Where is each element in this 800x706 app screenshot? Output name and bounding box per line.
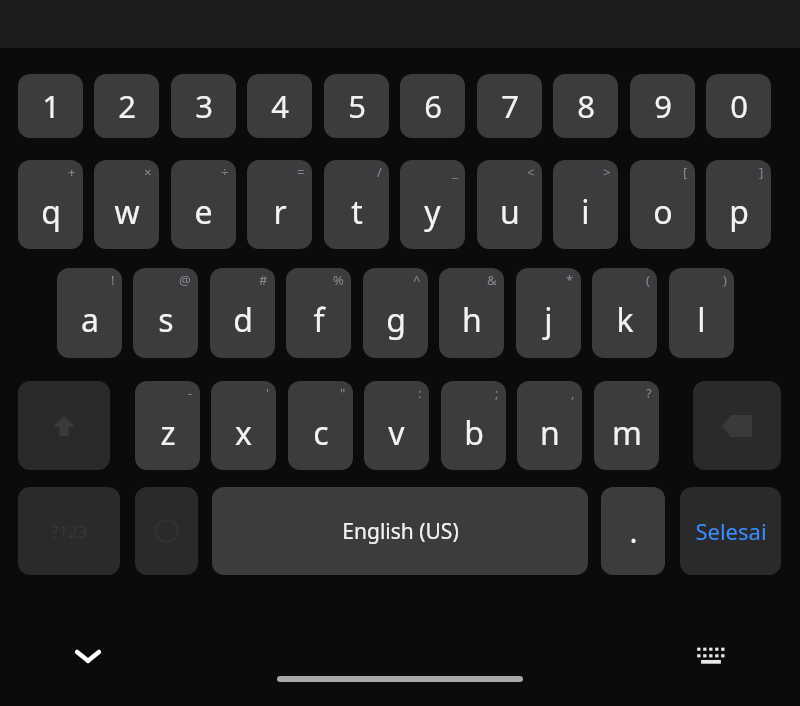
button[interactable]: _ — [400, 160, 465, 249]
staticText: t — [351, 190, 363, 234]
button[interactable]: × — [94, 160, 159, 249]
button[interactable]: [ — [630, 160, 695, 249]
staticText: j — [544, 298, 553, 342]
staticText: ( — [646, 271, 650, 289]
button[interactable]: Backspace — [693, 381, 781, 470]
staticText: m — [612, 411, 642, 455]
staticText: 3 — [195, 85, 213, 127]
staticText: u — [500, 190, 520, 234]
button[interactable]: 4 — [247, 74, 312, 138]
staticText: 9 — [654, 85, 672, 127]
button[interactable]: Switch keyboard — [681, 626, 741, 686]
staticText: - — [188, 384, 193, 402]
staticText: # — [259, 271, 268, 289]
button[interactable]: ( — [592, 268, 657, 358]
staticText: > — [603, 163, 611, 181]
button[interactable]: 9 — [630, 74, 695, 138]
staticText: p — [729, 190, 749, 234]
staticText: Selesai — [695, 516, 767, 546]
staticText: % — [333, 271, 344, 289]
staticText: 4 — [271, 85, 289, 127]
staticText: s — [158, 298, 174, 342]
staticText: 5 — [348, 85, 366, 127]
button[interactable]: > — [553, 160, 618, 249]
button[interactable]: 6 — [400, 74, 465, 138]
staticText: × — [144, 163, 152, 181]
staticText: ^ — [413, 271, 421, 289]
staticText: ' — [266, 384, 269, 402]
button[interactable]: # — [210, 268, 275, 358]
button[interactable]: " — [288, 381, 353, 470]
staticText: / — [377, 163, 382, 181]
button[interactable]: = — [247, 160, 312, 249]
staticText: b — [464, 411, 484, 455]
button[interactable]: 2 — [94, 74, 159, 138]
button[interactable]: / — [324, 160, 389, 249]
button[interactable]: ! — [57, 268, 122, 358]
staticText: = — [297, 163, 305, 181]
button[interactable]: Emoji — [135, 487, 198, 575]
staticText: 8 — [577, 85, 595, 127]
staticText: ] — [759, 163, 764, 181]
button[interactable]: * — [516, 268, 581, 358]
button[interactable]: 7 — [477, 74, 542, 138]
staticText: . — [629, 511, 638, 552]
staticText: l — [697, 298, 706, 342]
button[interactable]: + — [18, 160, 83, 249]
button[interactable]: & — [439, 268, 504, 358]
staticText: k — [616, 298, 634, 342]
button[interactable]: 5 — [324, 74, 389, 138]
button[interactable]: @ — [133, 268, 198, 358]
button[interactable]: 8 — [553, 74, 618, 138]
button[interactable]: 1 — [18, 74, 83, 138]
staticText: + — [68, 163, 76, 181]
staticText: q — [41, 190, 61, 234]
button[interactable]: , — [517, 381, 582, 470]
staticText: c — [313, 411, 329, 455]
button[interactable]: ÷ — [171, 160, 236, 249]
staticText: r — [273, 190, 287, 234]
staticText: y — [424, 190, 441, 234]
staticText: * — [566, 271, 574, 289]
button[interactable]: ; — [441, 381, 506, 470]
staticText: 0 — [730, 85, 748, 127]
button[interactable]: Symbols — [18, 487, 120, 575]
button[interactable]: ? — [594, 381, 659, 470]
staticText: e — [194, 190, 213, 234]
staticText: English (US) — [342, 517, 459, 546]
staticText: ? — [646, 384, 652, 402]
staticText: , — [571, 384, 575, 402]
staticText: _ — [452, 163, 458, 181]
button[interactable]: % — [286, 268, 351, 358]
button[interactable]: Hide keyboard — [58, 626, 118, 686]
button[interactable]: : — [364, 381, 429, 470]
button[interactable]: ] — [706, 160, 771, 249]
staticText: @ — [179, 271, 191, 289]
staticText: z — [160, 411, 176, 455]
staticText: a — [81, 298, 99, 342]
staticText: 6 — [424, 85, 442, 127]
staticText: 2 — [118, 85, 136, 127]
staticText: ÷ — [221, 163, 229, 181]
button[interactable]: Space — [212, 487, 588, 575]
staticText: x — [235, 411, 252, 455]
staticText: h — [462, 298, 482, 342]
button[interactable]: . — [601, 487, 665, 575]
button[interactable]: ' — [211, 381, 276, 470]
staticText: ) — [723, 271, 727, 289]
button[interactable]: 0 — [706, 74, 771, 138]
button[interactable]: < — [477, 160, 542, 249]
button[interactable]: ) — [669, 268, 734, 358]
button[interactable]: - — [135, 381, 200, 470]
staticText: " — [340, 384, 346, 402]
staticText: i — [581, 190, 590, 234]
button[interactable]: 3 — [171, 74, 236, 138]
staticText: 1 — [42, 85, 60, 127]
button[interactable]: ^ — [363, 268, 428, 358]
button[interactable]: Shift — [18, 381, 110, 470]
staticText: 7 — [501, 85, 519, 127]
staticText: v — [388, 411, 405, 455]
button[interactable]: Done — [680, 487, 781, 575]
staticText: ! — [111, 271, 115, 289]
staticText: ?123 — [51, 520, 88, 543]
